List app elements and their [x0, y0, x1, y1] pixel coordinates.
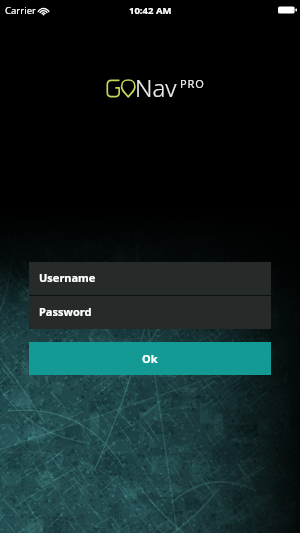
- staticText: PRO: [180, 76, 205, 91]
- staticText: Nav: [135, 71, 177, 104]
- other: GoNav PRO: [0, 0, 300, 533]
- other: Wi-Fi signal: [38, 7, 49, 15]
- staticText: Username: [39, 270, 96, 285]
- staticText: Carrier: [5, 4, 36, 17]
- staticText: Ok: [142, 351, 158, 366]
- staticText: Password: [39, 304, 92, 319]
- button[interactable]: Username: [29, 262, 271, 295]
- other: Battery full: [278, 5, 297, 15]
- button[interactable]: Ok: [29, 342, 271, 375]
- staticText: 10:42 AM: [129, 4, 172, 17]
- button[interactable]: Password: [29, 296, 271, 329]
